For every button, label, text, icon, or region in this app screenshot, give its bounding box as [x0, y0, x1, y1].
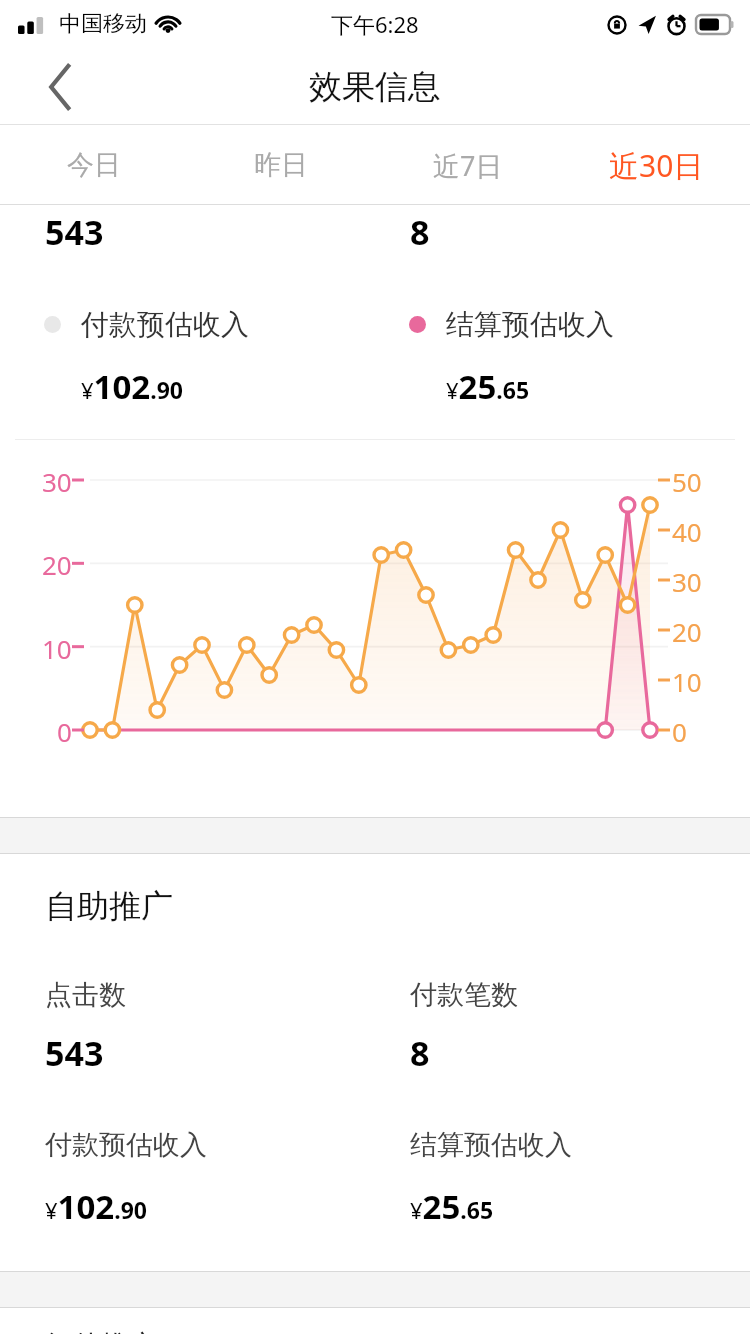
staticText: 付款笔数: [410, 978, 518, 1012]
staticText: 10: [672, 664, 702, 699]
staticText: 近30日: [609, 145, 704, 186]
staticText: 10: [42, 631, 72, 666]
staticText: 组件推广: [45, 1328, 157, 1334]
staticText: 30: [672, 564, 702, 599]
staticText: 40: [672, 514, 702, 549]
button[interactable]: 近30日: [562, 125, 750, 205]
staticText: 中国移动: [59, 10, 147, 38]
staticText: 付款预估收入: [81, 307, 249, 342]
staticText: 8: [410, 209, 430, 255]
button[interactable]: 昨日: [187, 125, 374, 205]
staticText: ¥25.65: [446, 364, 530, 409]
staticText: 20: [672, 614, 702, 649]
staticText: 效果信息: [309, 66, 441, 108]
staticText: 下午6:28: [331, 9, 419, 39]
staticText: 结算预估收入: [446, 307, 614, 342]
staticText: 0: [672, 714, 687, 749]
button[interactable]: 今日: [0, 125, 187, 205]
staticText: 自助推广: [45, 886, 173, 926]
staticText: 543: [45, 209, 104, 255]
staticText: 昨日: [254, 148, 308, 182]
staticText: 点击数: [45, 978, 126, 1012]
staticText: 近7日: [433, 147, 503, 184]
staticText: 付款预估收入: [45, 1128, 207, 1162]
staticText: 50: [672, 464, 702, 499]
staticText: ¥25.65: [410, 1184, 494, 1229]
staticText: 今日: [67, 148, 121, 182]
staticText: 20: [42, 547, 72, 582]
staticText: 8: [410, 1030, 430, 1076]
button[interactable]: 近7日: [374, 125, 562, 205]
staticText: 30: [42, 464, 72, 499]
staticText: 结算预估收入: [410, 1128, 572, 1162]
staticText: ¥102.90: [45, 1184, 147, 1229]
button[interactable]: Back: [30, 57, 90, 117]
staticText: 0: [57, 714, 72, 749]
staticText: 543: [45, 1030, 104, 1076]
staticText: ¥102.90: [81, 364, 183, 409]
